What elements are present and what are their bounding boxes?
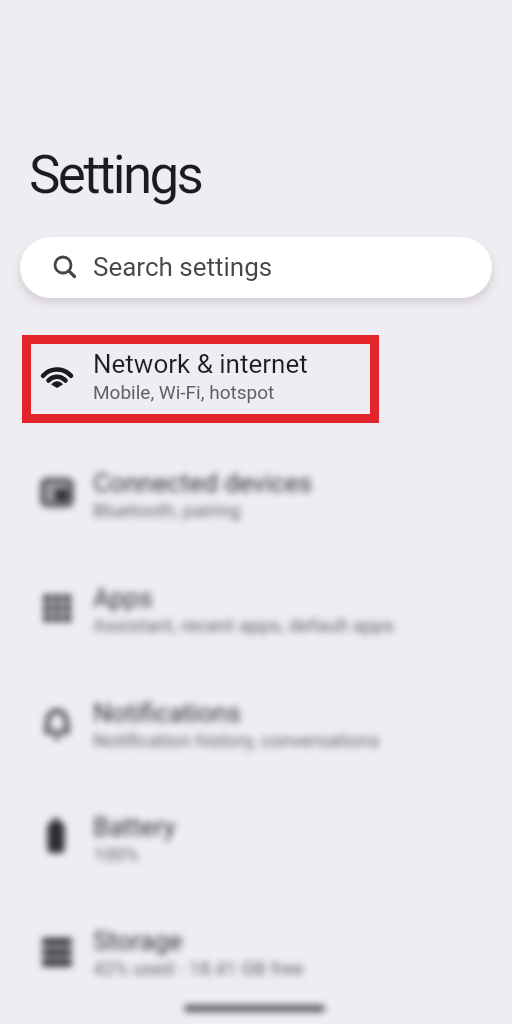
staticText: Connected devices xyxy=(93,468,313,498)
staticText: Notification history, conversations xyxy=(93,729,380,751)
staticText: Search settings xyxy=(93,252,273,282)
button[interactable]: Connected devices xyxy=(0,468,512,583)
button[interactable] xyxy=(0,330,512,428)
button[interactable]: Storage xyxy=(0,926,512,1024)
button[interactable]: Search settings xyxy=(20,237,492,298)
staticText: Assistant, recent apps, default apps xyxy=(93,614,395,636)
button[interactable]: Battery xyxy=(0,812,512,927)
staticText: Battery xyxy=(93,812,176,842)
staticText: Storage xyxy=(93,926,183,956)
staticText: Network & internet xyxy=(93,349,308,379)
staticText: Apps xyxy=(93,583,153,613)
button[interactable]: Apps xyxy=(0,583,512,698)
staticText: Bluetooth, pairing xyxy=(93,499,241,521)
staticText: Mobile, Wi-Fi, hotspot xyxy=(93,381,275,403)
staticText: Notifications xyxy=(93,698,241,728)
staticText: Settings xyxy=(29,144,202,206)
button[interactable]: Notifications xyxy=(0,698,512,813)
staticText: 100% xyxy=(93,843,139,865)
staticText: 42% used - 18.41 GB free xyxy=(93,957,304,979)
